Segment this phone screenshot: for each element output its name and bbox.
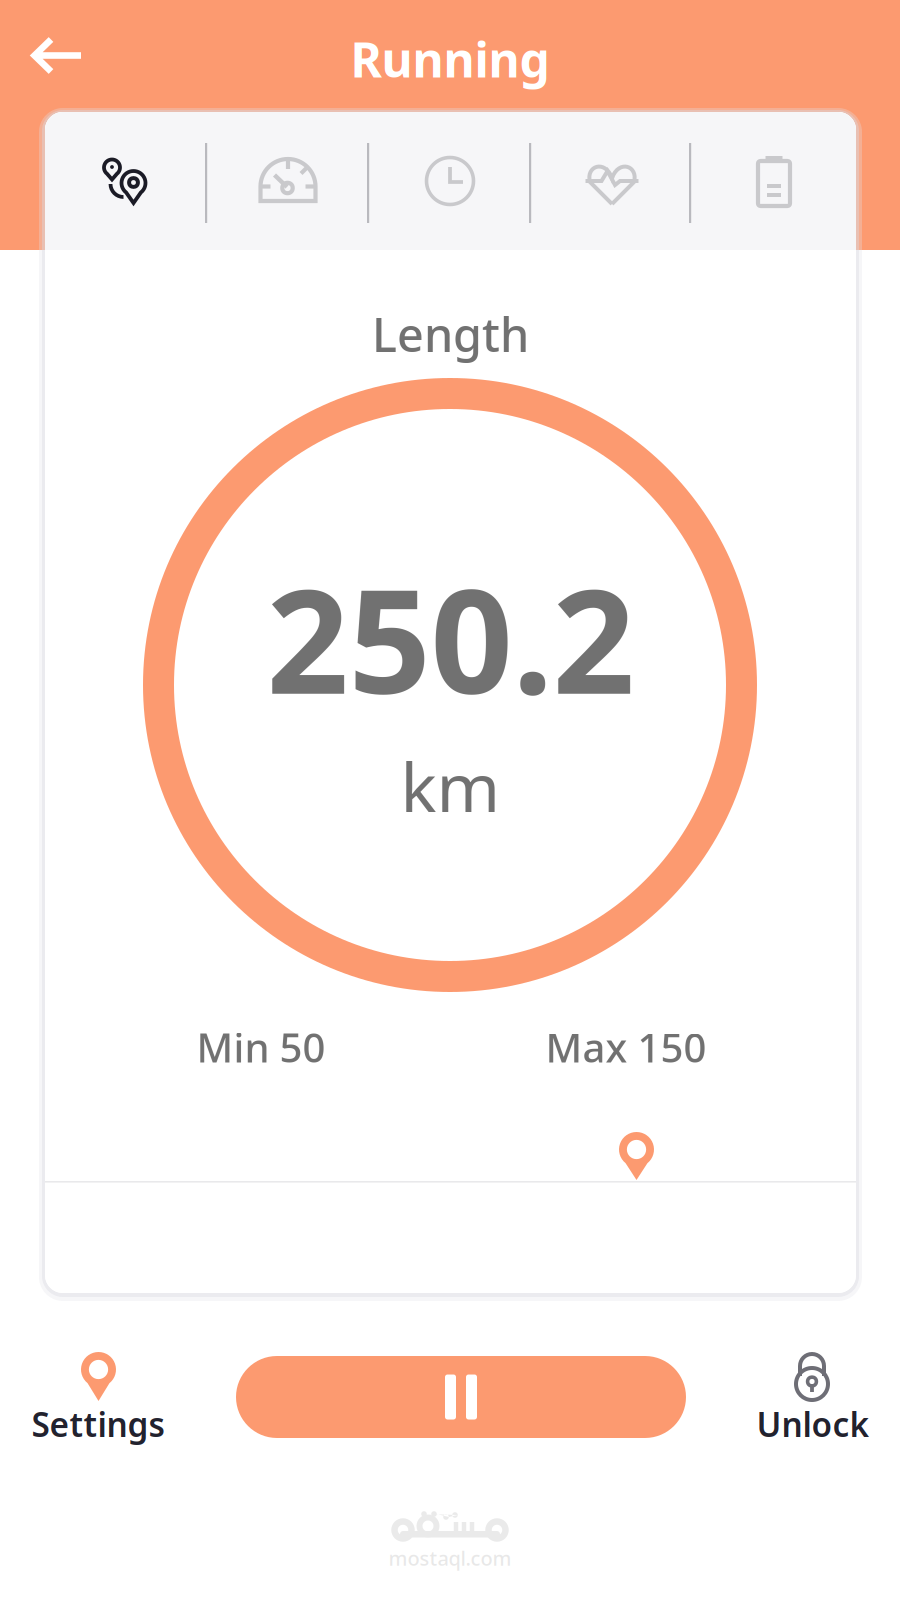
button[interactable]: Settings [0,1348,196,1452]
staticText: Length [372,303,529,365]
button[interactable]: Duration [375,112,525,250]
staticText: Running [350,27,549,91]
button[interactable]: Pause [236,1356,686,1438]
staticText: Unlock [756,1402,869,1446]
staticText: Settings [31,1402,164,1446]
staticText: mostaql.com [388,1545,511,1571]
button[interactable]: Speed [213,112,363,250]
staticText: 250.2 [266,542,634,734]
button[interactable]: Back [8,12,104,100]
button[interactable]: Heart rate [537,112,687,250]
button[interactable]: Battery [699,112,849,250]
button[interactable]: Route [50,112,200,250]
staticText: Min 50 [196,1020,325,1073]
staticText: Max 150 [545,1020,706,1073]
button[interactable]: Unlock [720,1348,900,1452]
staticText: km [400,741,500,831]
